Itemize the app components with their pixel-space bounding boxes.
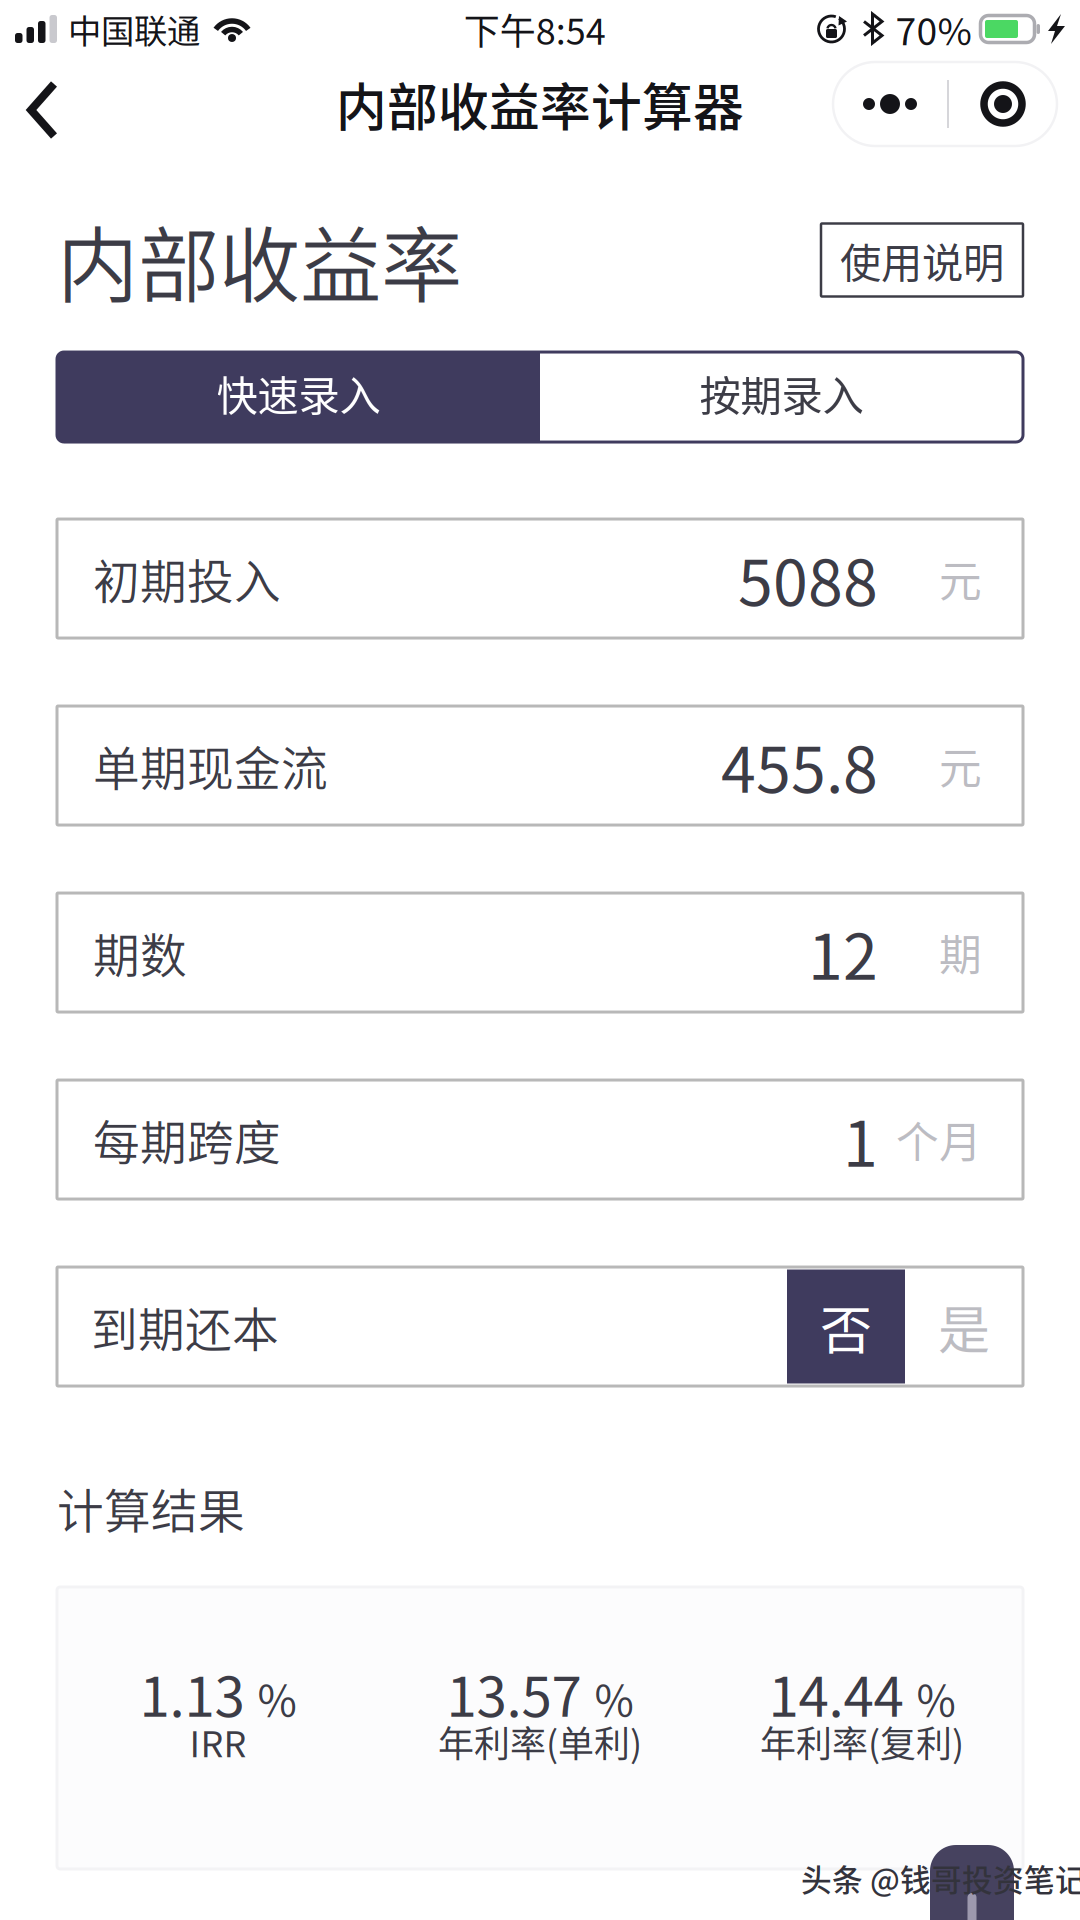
- staticText: 455.8: [721, 720, 878, 811]
- staticText: 到期还本: [91, 1293, 279, 1360]
- staticText: 快速录入: [216, 363, 380, 423]
- staticText: 元: [939, 735, 982, 796]
- staticText: 个月: [896, 1109, 982, 1170]
- staticText: 使用说明: [840, 230, 1004, 290]
- staticText: 年利率(单利): [438, 1715, 642, 1767]
- button[interactable]: 快速录入: [57, 352, 540, 442]
- staticText: %: [257, 1667, 296, 1729]
- staticText: 期数: [93, 919, 187, 986]
- staticText: 头条 @钱哥投资笔记: [801, 1856, 1080, 1900]
- staticText: 下午8:54: [464, 3, 606, 55]
- staticText: 12: [808, 907, 878, 998]
- staticText: %: [916, 1667, 955, 1729]
- staticText: 元: [939, 548, 982, 609]
- staticText: 计算结果: [57, 1474, 245, 1542]
- staticText: 年利率(复利): [760, 1715, 964, 1767]
- staticText: 5088: [738, 533, 878, 624]
- staticText: 期: [939, 922, 982, 983]
- staticText: 1: [843, 1094, 878, 1185]
- staticText: 70%: [895, 2, 971, 56]
- staticText: 初期投入: [93, 545, 281, 612]
- button[interactable]: 按期录入: [540, 352, 1023, 442]
- staticText: 14.44: [768, 1653, 903, 1733]
- button[interactable]: 否: [787, 1269, 905, 1383]
- staticText: 按期录入: [699, 363, 863, 423]
- button[interactable]: 更多: [833, 62, 1057, 146]
- staticText: 13.57: [446, 1653, 581, 1733]
- button[interactable]: 是: [905, 1269, 1023, 1383]
- staticText: 否: [820, 1289, 872, 1364]
- staticText: IRR: [189, 1715, 246, 1767]
- staticText: 内部收益率: [57, 201, 462, 319]
- staticText: %: [594, 1667, 633, 1729]
- staticText: 中国联通: [68, 5, 200, 53]
- staticText: 内部收益率计算器: [336, 67, 744, 141]
- staticText: 单期现金流: [93, 732, 328, 799]
- staticText: 1.13: [139, 1653, 244, 1733]
- staticText: 是: [938, 1289, 990, 1364]
- staticText: 每期跨度: [93, 1106, 281, 1173]
- button[interactable]: 返回: [0, 58, 83, 158]
- button[interactable]: 使用说明: [821, 223, 1023, 296]
